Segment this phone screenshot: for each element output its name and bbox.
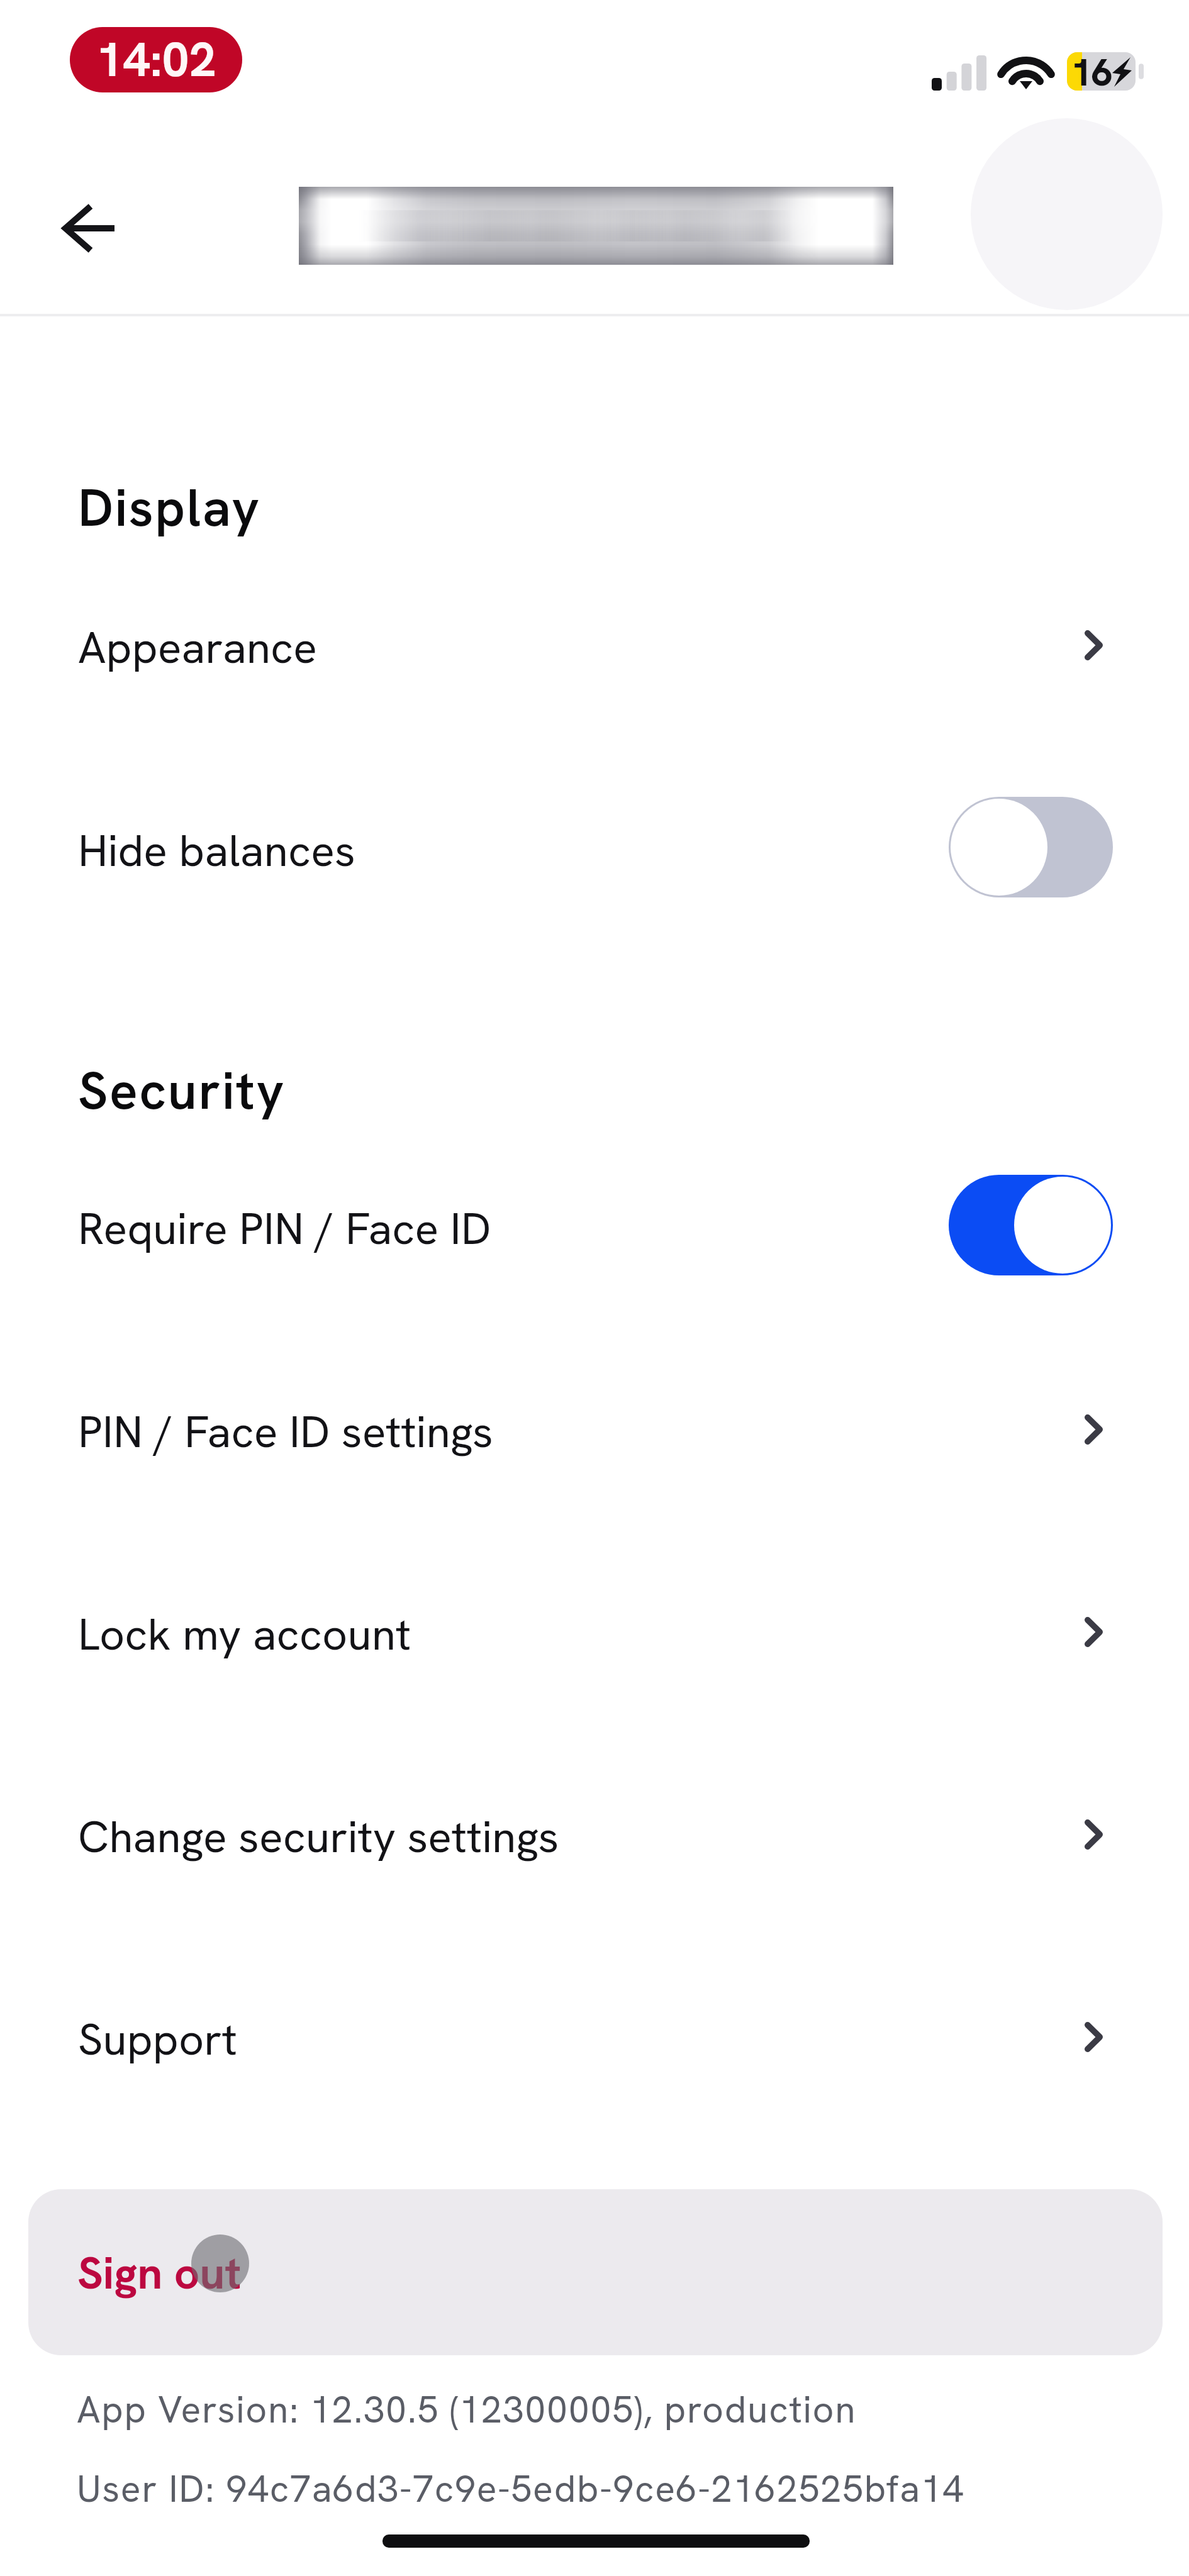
button[interactable]: Sign out	[28, 2189, 1163, 2355]
staticText: PIN / Face ID settings	[78, 1403, 493, 1460]
staticText: Change security settings	[78, 1808, 559, 1865]
staticText: Security	[78, 1057, 286, 1124]
button[interactable]: Appearance	[0, 608, 1189, 690]
button[interactable]: PIN / Face ID settings	[0, 1392, 1189, 1474]
staticText: App Version: 12.30.5 (12300005), product…	[77, 2385, 857, 2434]
staticText: User ID: 94c7a6d3-7c9e-5edb-9ce6-2162525…	[77, 2465, 965, 2513]
staticText: Lock my account	[78, 1606, 411, 1663]
button[interactable]: Profile	[971, 118, 1163, 310]
staticText: Require PIN / Face ID	[78, 1200, 491, 1257]
staticText: Support	[78, 2011, 238, 2068]
button[interactable]: Hide balances	[0, 811, 1189, 918]
button[interactable]: Support	[0, 2000, 1189, 2082]
staticText: Sign out	[77, 2244, 242, 2302]
staticText: Hide balances	[78, 822, 355, 879]
button[interactable]: Change security settings	[0, 1797, 1189, 1879]
button[interactable]: Back	[38, 177, 140, 279]
button[interactable]: On	[949, 1175, 1113, 1275]
staticText: 14:02	[96, 28, 216, 91]
staticText: Display	[78, 474, 261, 541]
button[interactable]: Require PIN / Face ID	[0, 1189, 1189, 1296]
staticText: 16	[1071, 48, 1112, 97]
staticText: Appearance	[78, 619, 318, 676]
button[interactable]: Off	[949, 797, 1113, 897]
button[interactable]: Lock my account	[0, 1595, 1189, 1677]
